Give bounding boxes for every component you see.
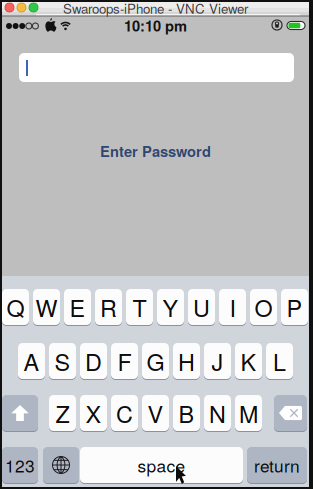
staticText: V bbox=[147, 396, 163, 430]
button[interactable]: M bbox=[235, 395, 262, 432]
staticText: W bbox=[35, 290, 57, 324]
button[interactable]: R bbox=[95, 289, 122, 326]
staticText: X bbox=[85, 396, 101, 430]
staticText: R bbox=[100, 290, 117, 324]
button[interactable]: Y bbox=[157, 289, 184, 326]
button[interactable]: space bbox=[80, 447, 243, 484]
staticText: A bbox=[23, 344, 39, 378]
staticText: C bbox=[116, 396, 133, 430]
staticText: J bbox=[211, 344, 223, 378]
staticText: 123 bbox=[5, 453, 35, 477]
button[interactable]: L bbox=[266, 343, 293, 380]
button[interactable]: return bbox=[247, 447, 307, 484]
button[interactable]: T bbox=[126, 289, 153, 326]
button[interactable]: H bbox=[173, 343, 200, 380]
staticText: H bbox=[178, 344, 195, 378]
button[interactable]: G bbox=[142, 343, 169, 380]
button[interactable]: Z bbox=[49, 395, 76, 432]
staticText: F bbox=[117, 344, 131, 378]
button[interactable]: Next keyboard bbox=[43, 447, 79, 484]
staticText: Z bbox=[55, 396, 69, 430]
button[interactable]: Q bbox=[2, 289, 29, 326]
staticText: Q bbox=[6, 290, 24, 324]
button[interactable]: N bbox=[204, 395, 231, 432]
staticText: I bbox=[229, 290, 235, 324]
button[interactable]: W bbox=[33, 289, 60, 326]
staticText: U bbox=[193, 290, 210, 324]
button[interactable]: S bbox=[49, 343, 76, 380]
staticText: Swaroops-iPhone - VNC Viewer bbox=[63, 0, 248, 18]
button[interactable]: C bbox=[111, 395, 138, 432]
staticText: D bbox=[85, 344, 102, 378]
button[interactable]: X bbox=[80, 395, 107, 432]
button[interactable]: Shift bbox=[2, 395, 38, 432]
button[interactable]: F bbox=[111, 343, 138, 380]
staticText: T bbox=[132, 290, 146, 324]
button[interactable]: B bbox=[173, 395, 200, 432]
button[interactable]: K bbox=[235, 343, 262, 380]
button[interactable]: V bbox=[142, 395, 169, 432]
staticText: M bbox=[239, 396, 258, 430]
staticText: L bbox=[273, 344, 286, 378]
button[interactable]: D bbox=[80, 343, 107, 380]
staticText: E bbox=[69, 290, 85, 324]
staticText: G bbox=[146, 344, 164, 378]
staticText: Y bbox=[162, 290, 178, 324]
button[interactable]: P bbox=[281, 289, 308, 326]
staticText: K bbox=[240, 344, 256, 378]
button[interactable]: U bbox=[188, 289, 215, 326]
staticText: P bbox=[286, 290, 302, 324]
button[interactable]: 123 bbox=[2, 447, 38, 484]
button[interactable]: I bbox=[219, 289, 246, 326]
button[interactable]: J bbox=[204, 343, 231, 380]
staticText: S bbox=[54, 344, 70, 378]
button[interactable]: Delete bbox=[274, 395, 307, 432]
staticText: O bbox=[254, 290, 272, 324]
button[interactable]: O bbox=[250, 289, 277, 326]
button[interactable]: E bbox=[64, 289, 91, 326]
button[interactable]: A bbox=[18, 343, 45, 380]
staticText: N bbox=[209, 396, 226, 430]
staticText: B bbox=[178, 396, 194, 430]
staticText: space bbox=[137, 453, 185, 477]
staticText: Enter Password bbox=[100, 140, 211, 161]
staticText: return bbox=[254, 453, 300, 477]
staticText: 10:10 pm bbox=[124, 15, 187, 36]
